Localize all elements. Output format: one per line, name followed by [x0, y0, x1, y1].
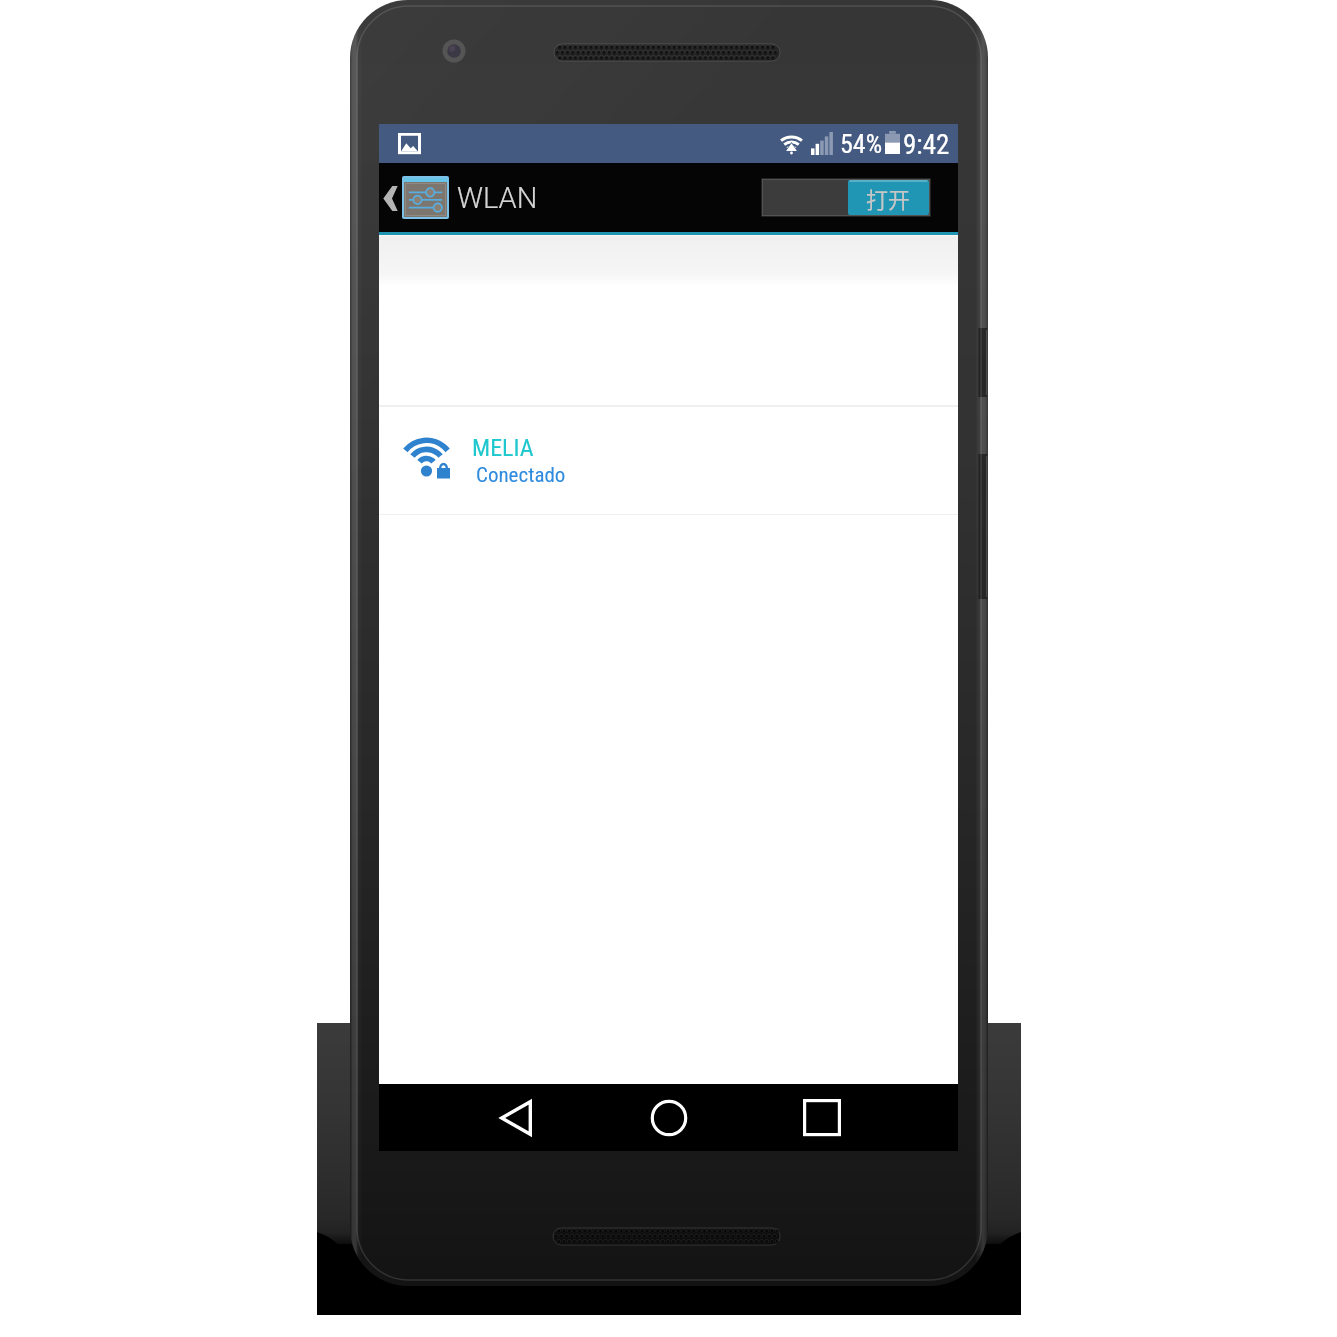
staticText: 打开 [866, 182, 911, 214]
staticText: 9:42 [903, 129, 950, 161]
button[interactable]: Back [379, 173, 401, 223]
staticText: 54% [840, 129, 883, 159]
button[interactable]: Back [484, 1084, 547, 1151]
button[interactable]: Home [637, 1084, 700, 1151]
button[interactable]: WLAN on [762, 179, 930, 216]
staticText: WLAN [457, 181, 538, 215]
button[interactable]: MELIA [379, 407, 958, 514]
button[interactable]: Recent apps [790, 1084, 853, 1151]
staticText: Conectado [476, 463, 566, 488]
staticText: MELIA [472, 434, 534, 462]
button[interactable]: Settings [402, 176, 449, 219]
